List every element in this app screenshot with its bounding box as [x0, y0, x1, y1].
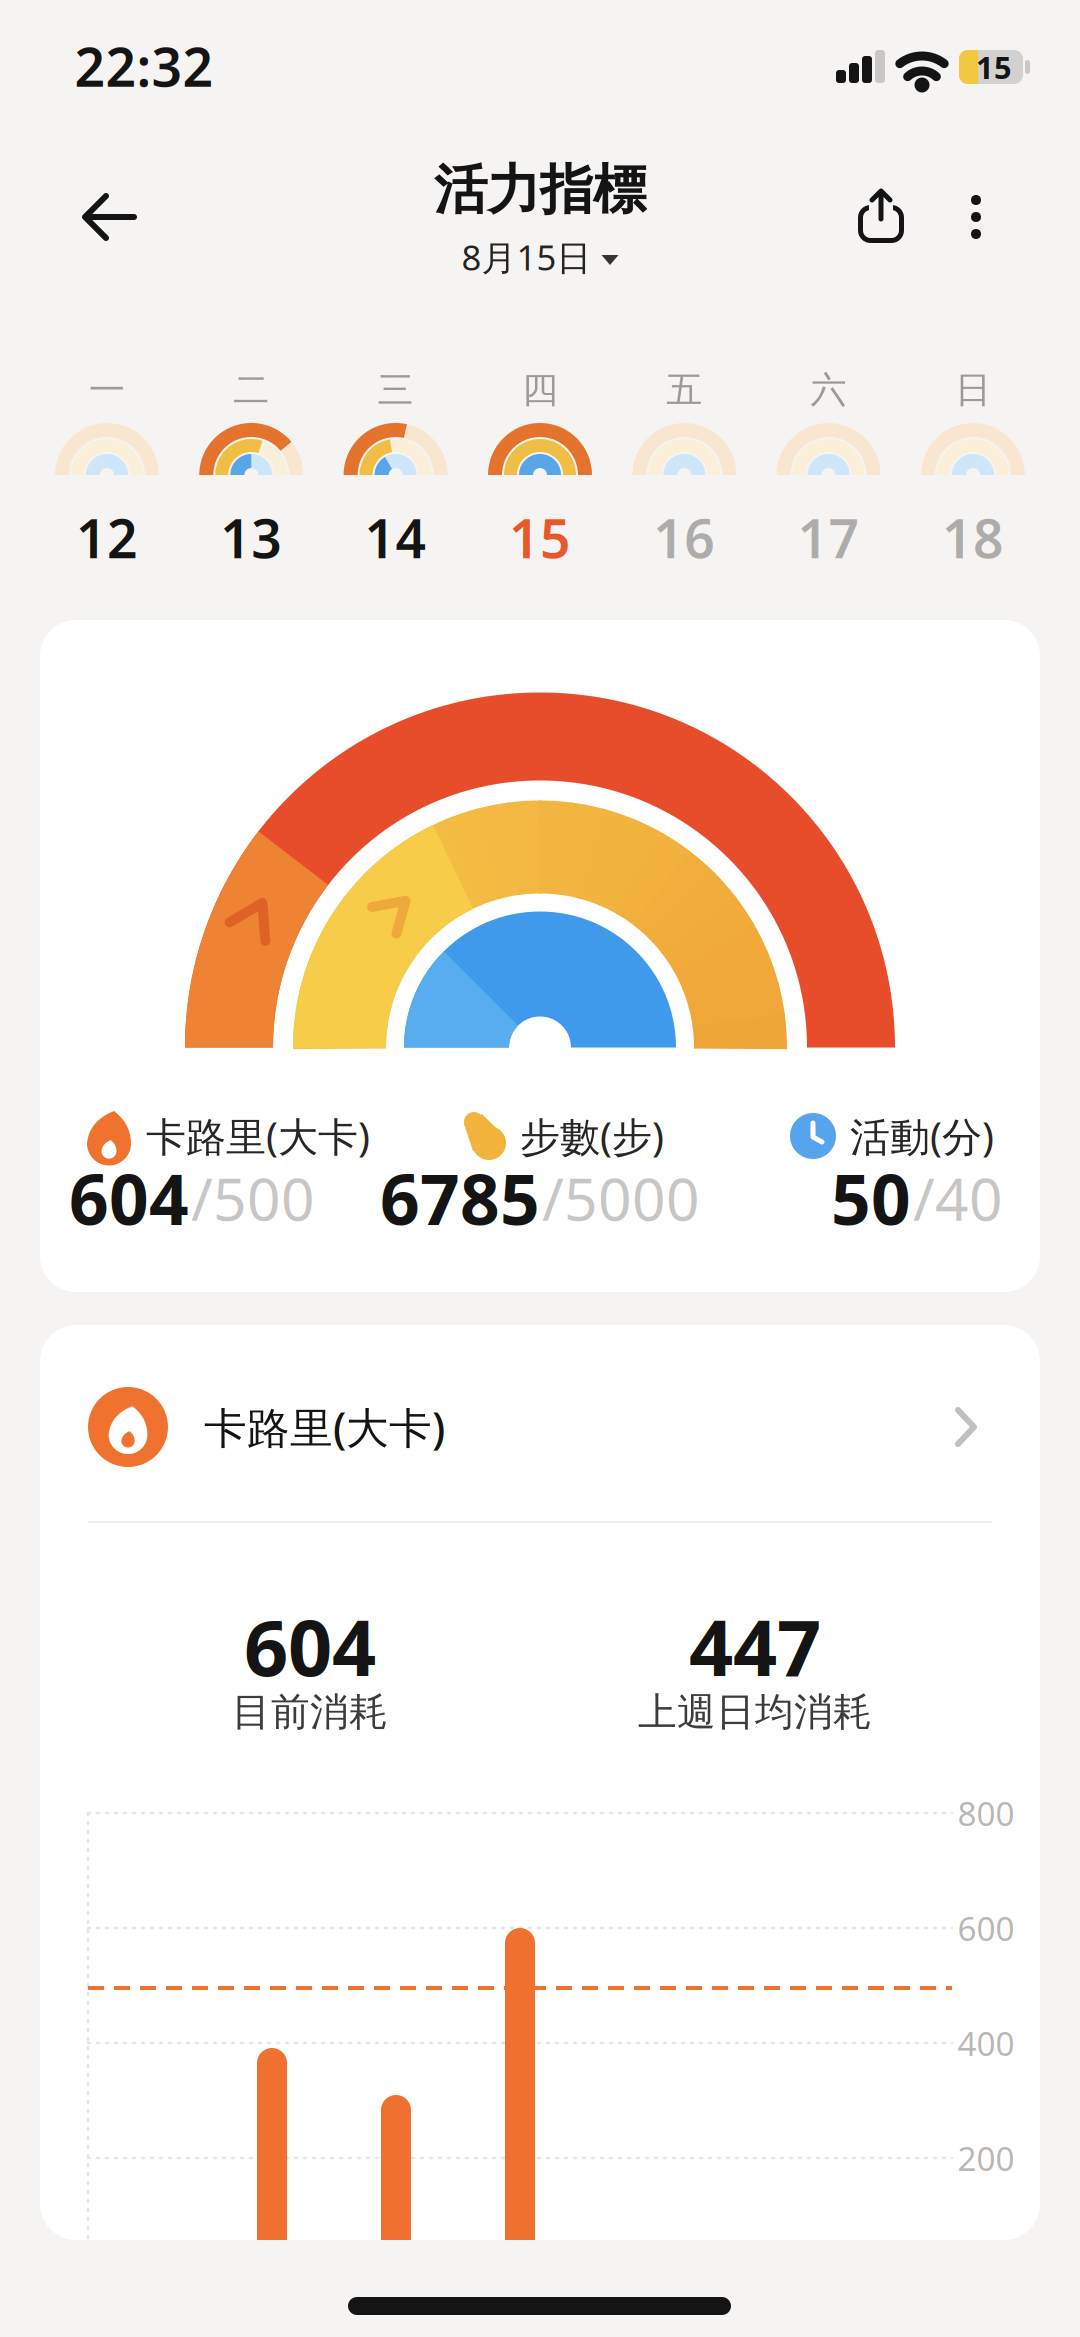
button[interactable]: 二 — [179, 356, 323, 568]
staticText: 二 — [233, 368, 269, 412]
staticText: 目前消耗 — [232, 1688, 388, 1736]
staticText: 16 — [653, 502, 715, 573]
staticText: 13 — [220, 502, 282, 573]
button[interactable]: 卡路里(大卡) — [88, 1377, 992, 1477]
staticText: 四 — [522, 368, 558, 412]
staticText: 卡路里(大卡) — [204, 1399, 445, 1455]
staticText: 15 — [509, 502, 571, 573]
staticText: 一 — [89, 368, 125, 412]
staticText: /5000 — [542, 1159, 700, 1237]
staticText: 50 — [831, 1152, 911, 1244]
staticText: 600 — [957, 1906, 1014, 1950]
staticText: 日 — [955, 368, 991, 412]
staticText: 步數(步) — [520, 1109, 664, 1162]
staticText: 17 — [798, 502, 860, 573]
staticText: /500 — [191, 1159, 315, 1237]
button[interactable]: Share — [856, 189, 906, 245]
button[interactable]: 日 — [901, 356, 1045, 568]
button[interactable]: 一 — [35, 356, 179, 568]
staticText: 400 — [957, 2021, 1014, 2065]
staticText: 800 — [957, 1791, 1014, 1835]
staticText: 卡路里(大卡) — [146, 1109, 370, 1162]
button[interactable]: More — [954, 190, 998, 244]
button[interactable]: 三 — [324, 356, 468, 568]
staticText: 六 — [811, 368, 847, 412]
staticText: 604 — [69, 1152, 189, 1244]
button[interactable]: 六 — [757, 356, 901, 568]
staticText: 活力指標 — [434, 157, 646, 223]
staticText: /40 — [913, 1159, 1003, 1237]
staticText: 8月15日 — [461, 234, 591, 280]
staticText: 18 — [942, 502, 1004, 573]
staticText: 200 — [957, 2136, 1014, 2180]
staticText: 447 — [689, 1595, 821, 1697]
button[interactable]: Back — [76, 187, 140, 247]
staticText: 上週日均消耗 — [638, 1688, 872, 1736]
staticText: 五 — [666, 368, 702, 412]
button[interactable]: 四 — [468, 356, 612, 568]
staticText: 12 — [76, 502, 138, 573]
staticText: 22:32 — [74, 31, 213, 101]
staticText: 6785 — [380, 1152, 540, 1244]
staticText: 604 — [244, 1595, 376, 1697]
button[interactable]: 五 — [612, 356, 756, 568]
staticText: 三 — [378, 368, 414, 412]
staticText: 15 — [976, 47, 1012, 87]
staticText: 活動(分) — [850, 1109, 994, 1162]
staticText: 14 — [365, 502, 427, 573]
button[interactable]: 8月15日 — [461, 234, 618, 280]
